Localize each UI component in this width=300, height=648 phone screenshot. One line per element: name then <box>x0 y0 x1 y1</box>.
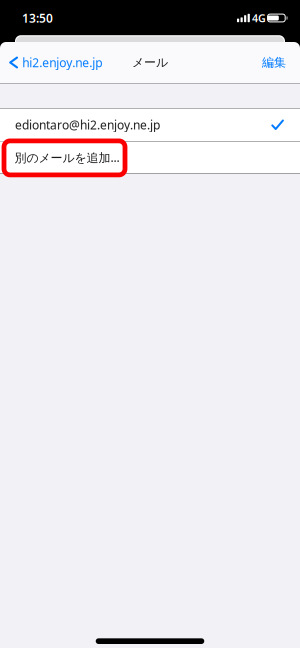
button[interactable]: 別のメールを追加... <box>0 142 300 173</box>
button[interactable]: hi2.enjoy.ne.jp <box>0 42 110 83</box>
staticText: 編集 <box>262 55 286 70</box>
staticText: hi2.enjoy.ne.jp <box>22 54 102 70</box>
button[interactable]: ediontaro@hi2.enjoy.ne.jp <box>0 108 300 141</box>
button[interactable]: 編集 <box>252 42 300 83</box>
staticText: 別のメールを追加... <box>14 149 119 165</box>
staticText: 4G <box>252 11 266 25</box>
staticText: メール <box>132 55 168 70</box>
staticText: ediontaro@hi2.enjoy.ne.jp <box>15 117 160 133</box>
staticText: 13:50 <box>22 10 53 26</box>
